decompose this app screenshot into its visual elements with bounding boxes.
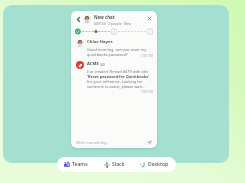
staticText: Chloe Hayes (87, 39, 113, 45)
staticText: (AI) (100, 63, 105, 67)
staticText: ACME (87, 61, 99, 67)
staticText: New chat (94, 14, 115, 20)
staticText: 11:03 PM (87, 90, 153, 94)
button[interactable]: Teams (64, 161, 88, 168)
staticText: Good morning, can you reset my quickbook… (87, 47, 153, 57)
button[interactable]: Slack (104, 161, 125, 168)
button[interactable]: Desktop (140, 161, 169, 168)
button[interactable]: Back (75, 16, 81, 22)
staticText: Desktop (148, 161, 169, 168)
button[interactable]: Send (146, 139, 152, 145)
staticText: 11:02 PM (87, 54, 153, 58)
staticText: #09134 · 2 people · New (94, 21, 132, 25)
button[interactable]: Close (145, 14, 153, 22)
staticText: I've created Thread #479 with title 'Res… (87, 69, 153, 89)
staticText: Slack (112, 161, 125, 168)
staticText: Teams (72, 161, 88, 168)
staticText: Write something... (76, 140, 146, 145)
